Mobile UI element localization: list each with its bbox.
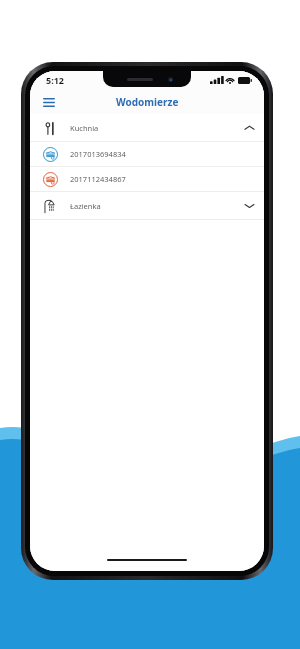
staticText: Kuchnia [70,123,99,133]
button[interactable]: Łazienka [30,192,264,219]
button[interactable]: Menu [38,91,60,113]
staticText: Łazienka [70,201,101,211]
staticText: 5:12 [46,74,64,86]
button[interactable]: Kuchnia [30,114,264,141]
staticText: 2017112434867 [70,174,126,184]
staticText: 2017013694834 [70,149,126,159]
button[interactable]: 2017013694834 [30,142,264,166]
button[interactable]: 2017112434867 [30,167,264,191]
staticText: Wodomierze [116,95,179,109]
